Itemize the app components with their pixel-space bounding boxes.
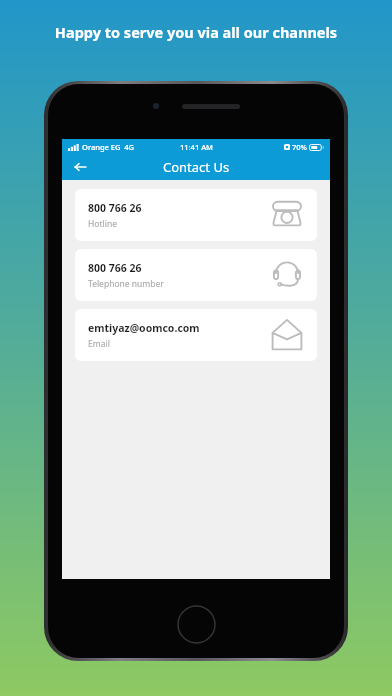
button[interactable]: 800 766 26 xyxy=(75,189,317,241)
staticText: 11:41 AM xyxy=(180,142,213,152)
staticText: Contact Us xyxy=(163,158,230,176)
staticText: Orange EG 4G xyxy=(82,142,135,152)
button[interactable]: Back xyxy=(69,156,91,178)
staticText: 70% xyxy=(292,142,307,152)
staticText: emtiyaz@oomco.com xyxy=(88,321,200,335)
staticText: Email xyxy=(88,338,110,350)
button[interactable]: emtiyaz@oomco.com xyxy=(75,309,317,361)
staticText: 800 766 26 xyxy=(88,261,142,275)
staticText: Telephone number xyxy=(88,278,164,290)
button[interactable]: 800 766 26 xyxy=(75,249,317,301)
other: Call hotline xyxy=(269,197,305,233)
staticText: Hotline xyxy=(88,218,117,230)
other: Call telephone xyxy=(269,257,305,293)
staticText: 800 766 26 xyxy=(88,201,142,215)
staticText: Happy to serve you via all our channels xyxy=(0,22,392,42)
other: Send email xyxy=(269,317,305,353)
